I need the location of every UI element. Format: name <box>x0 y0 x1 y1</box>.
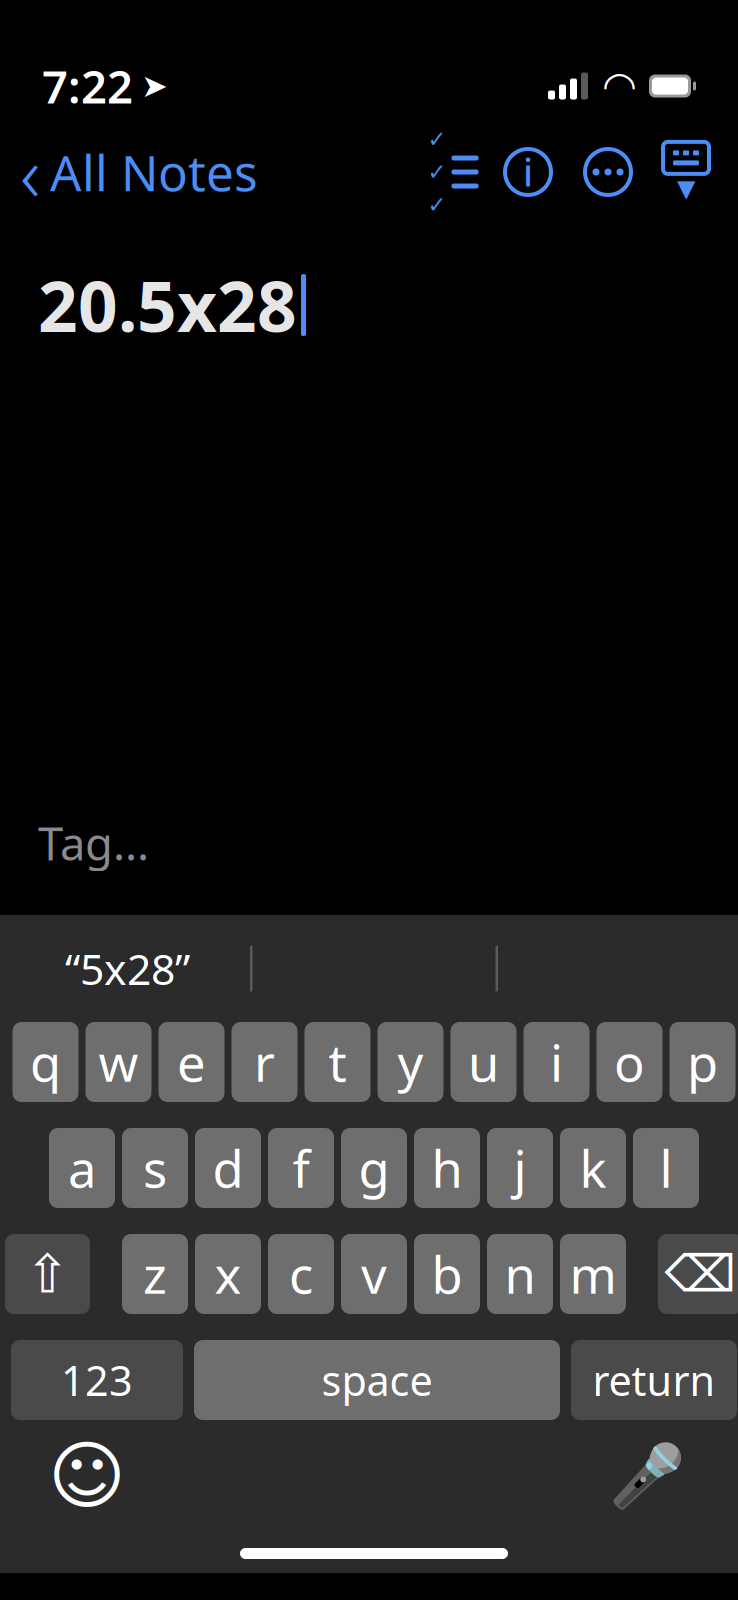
button[interactable]: n <box>487 1234 553 1314</box>
button[interactable]: u <box>450 1022 516 1102</box>
button[interactable]: Emoji <box>47 1436 127 1516</box>
staticText: l <box>659 1134 672 1202</box>
staticText: m <box>569 1240 616 1308</box>
staticText: ‹ <box>20 121 40 223</box>
button[interactable]: Delete <box>658 1234 738 1314</box>
staticText: Tag... <box>38 813 149 873</box>
button[interactable]: g <box>341 1128 407 1208</box>
staticText: ☺ <box>48 1434 126 1518</box>
button[interactable]: h <box>414 1128 480 1208</box>
staticText: ⇧ <box>25 1244 70 1304</box>
staticText: space <box>321 1353 432 1407</box>
button[interactable]: e <box>158 1022 224 1102</box>
button[interactable]: return <box>571 1340 737 1420</box>
staticText: p <box>687 1028 718 1096</box>
staticText: All Notes <box>50 139 258 205</box>
button[interactable]: ‹ <box>0 115 258 229</box>
staticText: c <box>289 1240 313 1308</box>
staticText: j <box>513 1134 526 1202</box>
staticText: w <box>98 1028 138 1096</box>
staticText: s <box>143 1134 167 1202</box>
button[interactable]: q <box>12 1022 78 1102</box>
staticText: t <box>328 1028 346 1096</box>
button[interactable]: k <box>560 1128 626 1208</box>
button[interactable]: m <box>560 1234 626 1314</box>
button[interactable]: c <box>268 1234 334 1314</box>
staticText: h <box>431 1134 462 1202</box>
button[interactable]: s <box>122 1128 188 1208</box>
staticText: v <box>361 1240 387 1308</box>
staticText: z <box>143 1240 167 1308</box>
button[interactable]: d <box>195 1128 261 1208</box>
staticText: ✓ <box>427 159 446 185</box>
button[interactable]: r <box>231 1022 297 1102</box>
staticText: e <box>177 1028 206 1096</box>
button[interactable]: Dictation <box>607 1436 687 1516</box>
staticText: i <box>550 1028 563 1096</box>
button[interactable]: j <box>487 1128 553 1208</box>
staticText: 20.5x28 <box>38 259 297 351</box>
staticText: g <box>358 1134 389 1202</box>
button[interactable]: Information <box>488 142 568 202</box>
staticText: d <box>212 1134 243 1202</box>
staticText: k <box>579 1134 606 1202</box>
staticText: ✓ <box>427 192 446 218</box>
staticText: “5x28” <box>65 940 190 997</box>
button[interactable]: y <box>377 1022 443 1102</box>
button[interactable]: o <box>596 1022 662 1102</box>
staticText: 🎤 <box>609 1441 685 1511</box>
staticText: return <box>592 1353 715 1407</box>
button[interactable]: l <box>633 1128 699 1208</box>
staticText: 7:22 <box>42 56 133 116</box>
button[interactable]: Shift <box>5 1234 90 1314</box>
button[interactable]: p <box>669 1022 735 1102</box>
staticText: x <box>214 1240 241 1308</box>
button[interactable]: t <box>304 1022 370 1102</box>
staticText: q <box>30 1028 61 1096</box>
staticText: a <box>68 1134 96 1202</box>
staticText: y <box>397 1028 423 1096</box>
staticText: o <box>614 1028 645 1096</box>
staticText: ⌫ <box>664 1245 736 1303</box>
button[interactable]: i <box>523 1022 589 1102</box>
button[interactable]: More <box>568 142 648 202</box>
button[interactable]: “5x28” <box>5 933 250 1003</box>
staticText: r <box>254 1028 275 1096</box>
button[interactable]: Tag... <box>38 803 149 883</box>
staticText: u <box>468 1028 499 1096</box>
button[interactable]: z <box>122 1234 188 1314</box>
staticText: ➤ <box>141 68 168 104</box>
staticText: ◠ <box>602 63 637 109</box>
staticText: ▼ <box>677 175 695 202</box>
button[interactable]: Checklist <box>418 142 488 202</box>
button[interactable]: b <box>414 1234 480 1314</box>
button[interactable]: w <box>85 1022 151 1102</box>
staticText: i <box>523 147 533 197</box>
staticText: n <box>504 1240 535 1308</box>
staticText: ✓ <box>427 126 446 152</box>
button[interactable]: x <box>195 1234 261 1314</box>
button[interactable]: 123 <box>11 1340 183 1420</box>
button[interactable]: v <box>341 1234 407 1314</box>
button[interactable]: a <box>49 1128 115 1208</box>
button[interactable]: f <box>268 1128 334 1208</box>
staticText: b <box>431 1240 462 1308</box>
button[interactable]: Hide Keyboard <box>648 141 724 203</box>
staticText: 123 <box>61 1353 133 1407</box>
staticText: f <box>292 1134 309 1202</box>
button[interactable]: space <box>194 1340 560 1420</box>
